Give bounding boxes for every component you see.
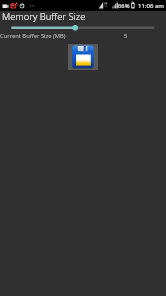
staticText: 5 (124, 32, 128, 40)
staticText: Memory Buffer Size (2, 10, 86, 23)
staticText: 11:06 am (138, 2, 164, 10)
button[interactable]: Buffer size slider (0, 22, 166, 34)
staticText: 66% (118, 2, 130, 10)
button[interactable]: Save (68, 44, 98, 70)
staticText: Current Buffer Size (MB) (0, 32, 66, 40)
